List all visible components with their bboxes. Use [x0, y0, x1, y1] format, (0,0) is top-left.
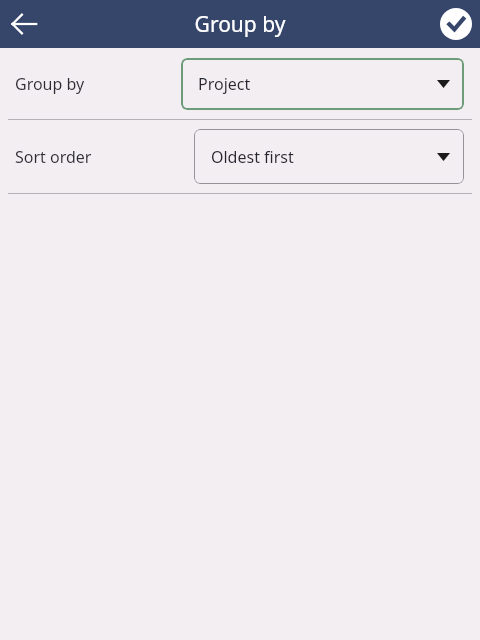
staticText: Sort order — [15, 146, 92, 168]
button[interactable]: Project — [181, 58, 464, 110]
button[interactable]: Oldest first — [194, 129, 464, 184]
staticText: Project — [198, 73, 251, 95]
button[interactable]: Group by — [0, 48, 480, 119]
button[interactable]: Done — [432, 0, 480, 48]
button[interactable]: Back — [0, 0, 48, 48]
staticText: Group by — [0, 10, 480, 39]
button[interactable]: Sort order — [0, 120, 480, 193]
staticText: Group by — [15, 73, 85, 95]
staticText: Oldest first — [211, 146, 294, 168]
